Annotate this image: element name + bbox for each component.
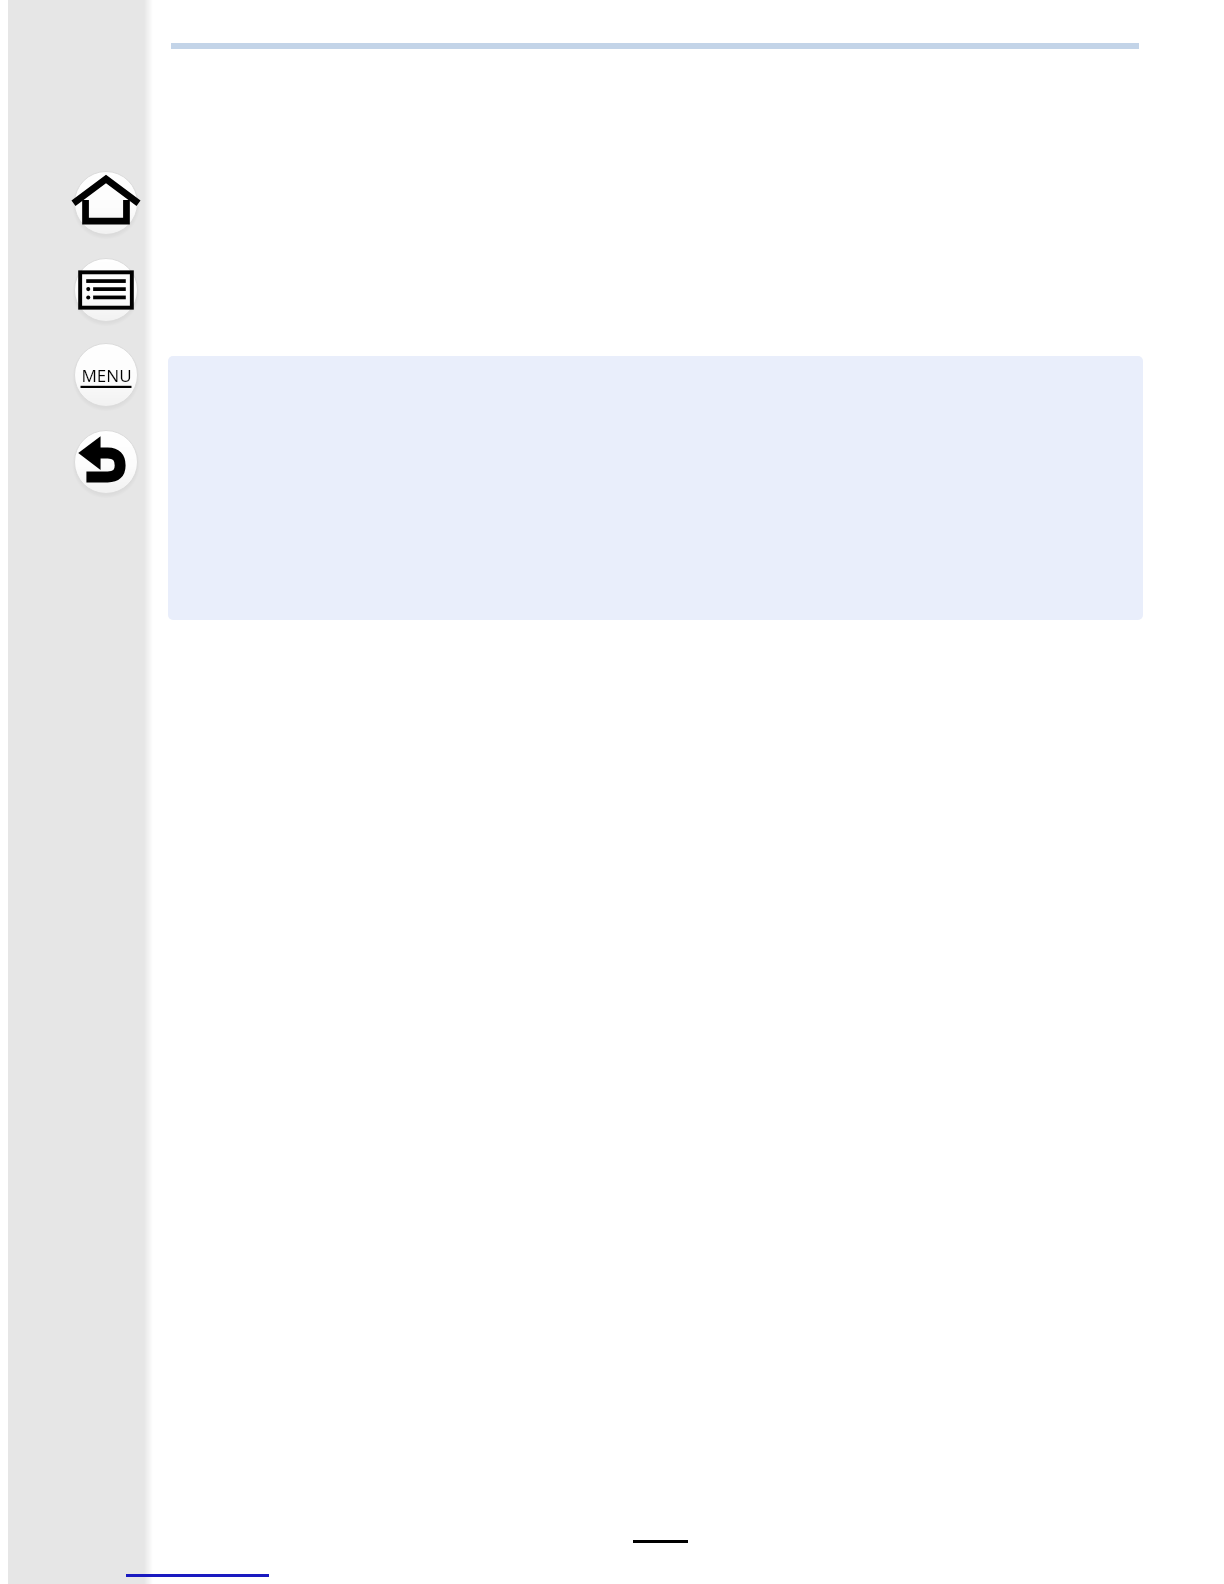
- button[interactable]: Back: [72, 428, 140, 496]
- staticText: MENU: [81, 364, 132, 387]
- button[interactable]: Home: [72, 169, 140, 237]
- button[interactable]: Menu: [72, 341, 140, 409]
- button[interactable]: Table of contents: [72, 256, 140, 324]
